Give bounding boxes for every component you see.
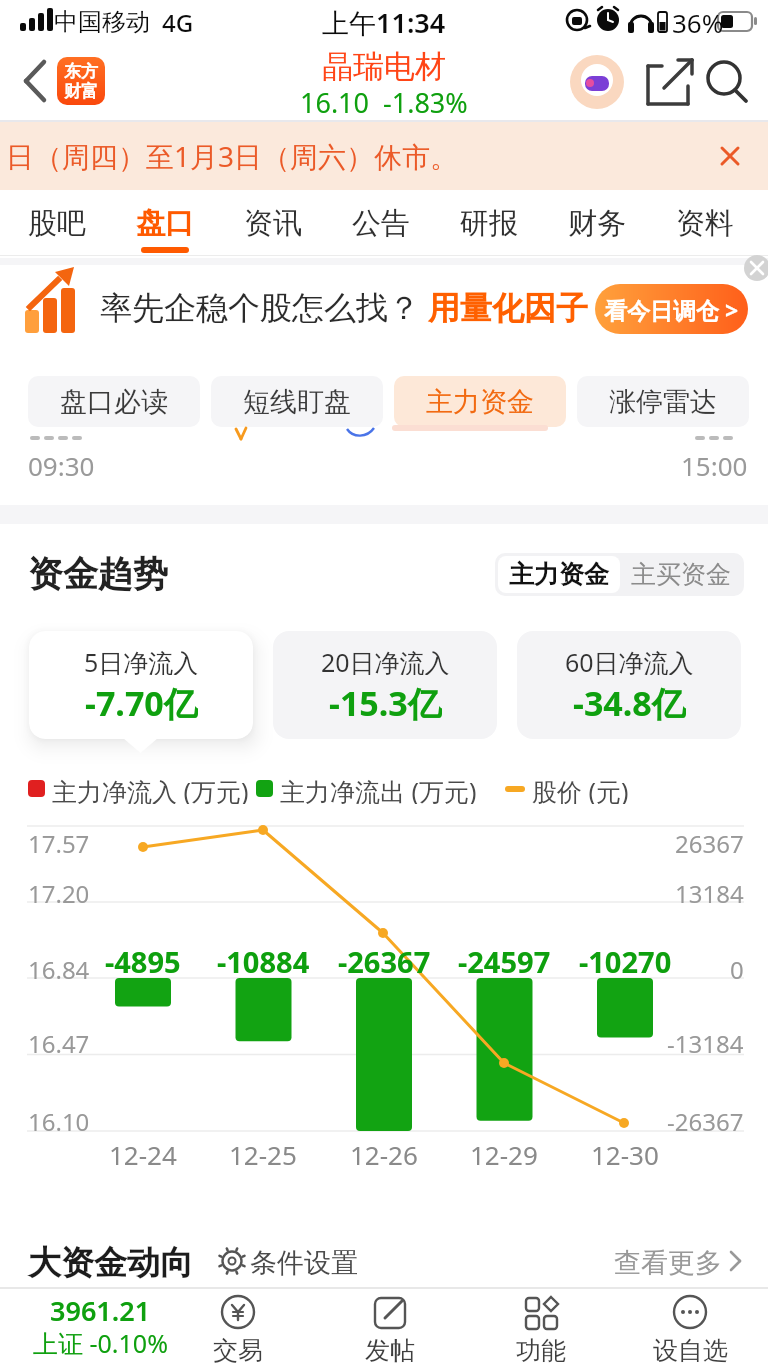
- staticText: 17.57: [28, 827, 90, 855]
- staticText: 条件设置: [250, 1246, 358, 1280]
- staticText: 主买资金: [631, 559, 731, 590]
- staticText: 13184: [675, 877, 744, 905]
- staticText: 中国移动: [54, 7, 150, 37]
- staticText: 研报: [460, 205, 518, 242]
- staticText: 16.10: [28, 1105, 90, 1133]
- staticText: 盘口必读: [60, 385, 168, 419]
- staticText: 股价 (元): [532, 774, 629, 804]
- staticText: 17.20: [28, 877, 90, 905]
- button[interactable]: [273, 631, 497, 739]
- staticText: 36%: [672, 5, 724, 40]
- button[interactable]: 交易: [188, 1335, 288, 1363]
- staticText: -15.3亿: [329, 680, 442, 724]
- staticText: 资讯: [244, 205, 302, 242]
- button[interactable]: 查看更多: [614, 1240, 726, 1286]
- staticText: 主力资金: [426, 385, 534, 419]
- button[interactable]: [570, 55, 624, 109]
- button[interactable]: 东方 财富: [57, 57, 105, 105]
- button[interactable]: 公告: [331, 200, 431, 246]
- staticText: 12-25: [229, 1137, 297, 1167]
- button[interactable]: [517, 631, 741, 739]
- staticText: 4G: [162, 6, 194, 39]
- staticText: 主力净流入 (万元): [52, 774, 249, 804]
- staticText: 公告: [352, 205, 410, 242]
- staticText: -26367: [338, 942, 431, 974]
- staticText: 资料: [676, 205, 734, 242]
- staticText: -10884: [217, 942, 310, 974]
- staticText: 16.10 -1.83%: [300, 84, 468, 116]
- staticText: 盘口: [136, 205, 194, 242]
- button[interactable]: 条件设置: [250, 1240, 370, 1286]
- staticText: 0: [730, 953, 744, 981]
- button[interactable]: 财务: [547, 200, 647, 246]
- button[interactable]: 资料: [655, 200, 755, 246]
- staticText: 16.84: [28, 953, 90, 981]
- staticText: 26367: [675, 827, 744, 855]
- staticText: -34.8亿: [573, 680, 686, 724]
- staticText: 看今日调仓 >: [604, 294, 739, 325]
- staticText: 东方 财富: [64, 61, 98, 102]
- staticText: 60日净流入: [565, 645, 694, 675]
- staticText: 率先企稳个股怎么找？: [100, 288, 420, 328]
- staticText: -7.70亿: [85, 680, 198, 724]
- button[interactable]: 盘口必读: [28, 376, 200, 427]
- button[interactable]: [29, 631, 253, 739]
- button[interactable]: 功能: [491, 1335, 591, 1363]
- staticText: -10270: [579, 942, 672, 974]
- staticText: 设自选: [653, 1335, 728, 1363]
- staticText: 查看更多: [614, 1246, 722, 1280]
- staticText: 日（周四）至1月3日（周六）休市。: [6, 137, 459, 175]
- staticText: 涨停雷达: [609, 385, 717, 419]
- button[interactable]: 资讯: [223, 200, 323, 246]
- button[interactable]: 主买资金: [620, 556, 741, 593]
- button[interactable]: 发帖: [340, 1335, 440, 1363]
- staticText: 主力净流出 (万元): [280, 774, 477, 804]
- staticText: 上午11:34: [322, 4, 446, 41]
- staticText: 15:00: [681, 448, 748, 478]
- staticText: 12-24: [109, 1137, 177, 1167]
- staticText: -4895: [105, 942, 181, 974]
- button[interactable]: 涨停雷达: [577, 376, 749, 427]
- staticText: 5日净流入: [84, 645, 199, 675]
- staticText: 短线盯盘: [243, 385, 351, 419]
- button[interactable]: 股吧: [7, 200, 107, 246]
- staticText: 晶瑞电材: [322, 47, 446, 86]
- staticText: 12-26: [350, 1137, 418, 1167]
- staticText: 交易: [213, 1335, 263, 1363]
- staticText: 3961.21: [50, 1292, 151, 1324]
- staticText: 09:30: [28, 448, 95, 478]
- staticText: 资金趋势: [28, 552, 168, 596]
- staticText: 用量化因子: [428, 288, 588, 328]
- staticText: 12-30: [591, 1137, 659, 1167]
- staticText: -13184: [667, 1027, 744, 1055]
- staticText: 20日净流入: [321, 645, 450, 675]
- staticText: 大资金动向: [28, 1242, 193, 1284]
- staticText: -24597: [458, 942, 551, 974]
- button[interactable]: 盘口: [115, 200, 215, 246]
- staticText: -26367: [667, 1105, 744, 1133]
- staticText: 上证 -0.10%: [33, 1326, 168, 1356]
- button[interactable]: 主力资金: [498, 556, 620, 593]
- staticText: 16.47: [28, 1027, 90, 1055]
- button[interactable]: 短线盯盘: [211, 376, 383, 427]
- staticText: 股吧: [28, 205, 86, 242]
- button[interactable]: 研报: [439, 200, 539, 246]
- button[interactable]: 主力资金: [394, 376, 566, 427]
- staticText: 发帖: [365, 1335, 415, 1363]
- staticText: 财务: [568, 205, 626, 242]
- button[interactable]: 设自选: [640, 1335, 740, 1363]
- staticText: 主力资金: [509, 559, 609, 590]
- staticText: 12-29: [470, 1137, 538, 1167]
- button[interactable]: 看今日调仓 >: [595, 284, 748, 334]
- staticText: 功能: [516, 1335, 566, 1363]
- button[interactable]: 日（周四）至1月3日（周六）休市。: [6, 130, 706, 182]
